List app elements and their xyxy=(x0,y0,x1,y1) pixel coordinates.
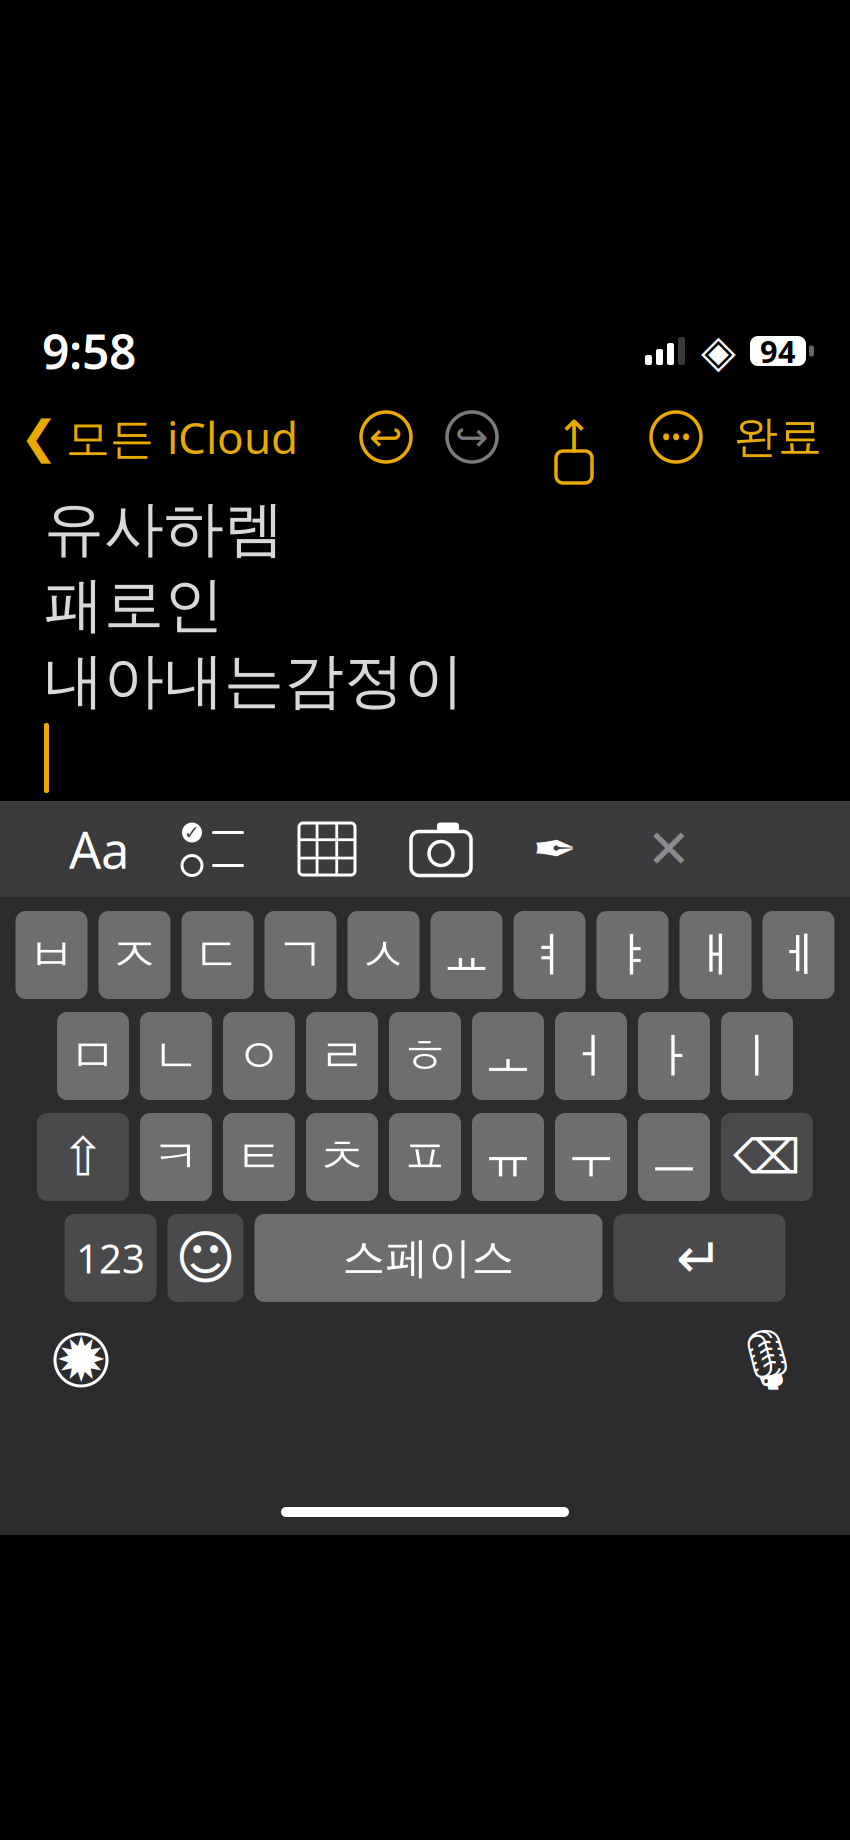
staticText: 완료 xyxy=(734,410,822,464)
staticText: ㄴ xyxy=(152,1026,200,1085)
button[interactable]: Hide keyboard xyxy=(612,801,726,897)
button[interactable]: Emoji xyxy=(167,1214,243,1302)
staticText: ㅁ xyxy=(69,1026,117,1085)
staticText: ✕ xyxy=(646,819,691,879)
button[interactable]: ㅌ xyxy=(223,1113,295,1201)
staticText: ㅌ xyxy=(235,1127,283,1186)
button[interactable]: ㅛ xyxy=(430,911,502,999)
staticText: ㅣ xyxy=(733,1026,781,1085)
button[interactable]: ㅈ xyxy=(98,911,170,999)
button[interactable]: Next keyboard xyxy=(38,1317,124,1403)
button[interactable]: ㄱ xyxy=(264,911,336,999)
button[interactable]: Table xyxy=(270,801,384,897)
button[interactable]: ㅍ xyxy=(389,1113,461,1201)
button[interactable]: ㅗ xyxy=(472,1012,544,1100)
staticText: ✹ xyxy=(55,1325,106,1395)
staticText: 모든 iCloud xyxy=(66,408,298,466)
button[interactable]: Markup xyxy=(498,801,612,897)
staticText: ㄱ xyxy=(276,925,324,984)
staticText: ㅈ xyxy=(110,925,158,984)
staticText: ㅛ xyxy=(442,925,490,984)
staticText: ㅅ xyxy=(359,925,407,984)
button[interactable]: ㅜ xyxy=(555,1113,627,1201)
staticText: ❮ xyxy=(20,411,58,463)
button[interactable]: ㅇ xyxy=(223,1012,295,1100)
button[interactable]: ㅅ xyxy=(347,911,419,999)
button[interactable]: ㅡ xyxy=(638,1113,710,1201)
staticText: ㅐ xyxy=(691,925,739,984)
staticText: ㄷ xyxy=(193,925,241,984)
button[interactable]: ㅊ xyxy=(306,1113,378,1201)
button[interactable]: Format xyxy=(42,801,156,897)
staticText: ㄹ xyxy=(318,1026,366,1085)
staticText: ㅡ xyxy=(650,1127,698,1186)
staticText: ⌫ xyxy=(733,1130,801,1184)
button[interactable]: ㅋ xyxy=(140,1113,212,1201)
staticText: 유사하렘 xyxy=(44,492,284,566)
staticText: 🎙 xyxy=(730,1326,804,1393)
staticText: Aa xyxy=(69,815,129,883)
button[interactable]: 완료 xyxy=(734,398,850,476)
button[interactable]: Return xyxy=(613,1214,785,1302)
staticText: ㅍ xyxy=(401,1127,449,1186)
staticText: ㅔ xyxy=(774,925,822,984)
staticText: ••• xyxy=(661,419,691,455)
button[interactable]: ㅠ xyxy=(472,1113,544,1201)
button[interactable]: 123 xyxy=(64,1214,156,1302)
staticText: ㅓ xyxy=(567,1026,615,1085)
button[interactable]: Checklist xyxy=(156,801,270,897)
button[interactable]: ㅏ xyxy=(638,1012,710,1100)
staticText: ㅇ xyxy=(235,1026,283,1085)
button[interactable]: Dictation xyxy=(724,1317,810,1403)
button[interactable]: Camera xyxy=(384,801,498,897)
staticText: ⇧ xyxy=(60,1127,105,1187)
staticText: 스페이스 xyxy=(342,1232,514,1284)
button[interactable]: ㅂ xyxy=(15,911,87,999)
button[interactable]: Undo xyxy=(358,409,414,465)
staticText: ㅏ xyxy=(650,1026,698,1085)
staticText: ㅋ xyxy=(152,1127,200,1186)
button[interactable]: ㅎ xyxy=(389,1012,461,1100)
staticText: ✓ xyxy=(184,822,200,843)
button[interactable]: ㅣ xyxy=(721,1012,793,1100)
staticText: ↪ xyxy=(455,414,489,460)
staticText: ㅊ xyxy=(318,1127,366,1186)
staticText: ㅠ xyxy=(484,1127,532,1186)
button[interactable]: Redo xyxy=(444,409,500,465)
button[interactable]: Share xyxy=(546,406,602,468)
staticText: 패로인 xyxy=(44,568,224,642)
staticText: ↩ xyxy=(369,414,403,460)
staticText: 내아내는감정이 xyxy=(44,644,464,718)
button[interactable]: 스페이스 xyxy=(254,1214,602,1302)
button[interactable]: ㅓ xyxy=(555,1012,627,1100)
staticText: 9:58 xyxy=(42,319,136,383)
staticText: ㅂ xyxy=(27,925,75,984)
staticText: ㅑ xyxy=(608,925,656,984)
button[interactable]: ㅕ xyxy=(513,911,585,999)
staticText: ㅕ xyxy=(525,925,573,984)
staticText: 123 xyxy=(76,1231,145,1284)
staticText: ㅎ xyxy=(401,1026,449,1085)
staticText: ◈ xyxy=(701,325,736,377)
staticText: ㅜ xyxy=(567,1127,615,1186)
button[interactable]: Shift xyxy=(37,1113,129,1201)
button[interactable]: ㄴ xyxy=(140,1012,212,1100)
button[interactable]: ㅐ xyxy=(679,911,751,999)
button[interactable]: More xyxy=(648,409,704,465)
button[interactable]: ㄷ xyxy=(181,911,253,999)
button[interactable]: ❮ xyxy=(0,396,298,478)
button[interactable]: Delete xyxy=(721,1113,813,1201)
staticText: ✒ xyxy=(532,819,577,879)
staticText: 94 xyxy=(760,331,796,371)
staticText: ㅗ xyxy=(484,1026,532,1085)
button[interactable]: ㅁ xyxy=(57,1012,129,1100)
staticText: ↑ xyxy=(555,411,593,463)
button[interactable]: ㅔ xyxy=(762,911,834,999)
button[interactable]: ㅑ xyxy=(596,911,668,999)
staticText: ↵ xyxy=(676,1226,723,1290)
staticText: ☺ xyxy=(175,1225,236,1291)
button[interactable]: ㄹ xyxy=(306,1012,378,1100)
